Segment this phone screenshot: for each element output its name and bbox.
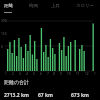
staticText: 2713.2 km [4, 92, 29, 99]
staticText: 9 [60, 72, 62, 76]
staticText: 6 [40, 72, 42, 76]
staticText: 150 [1, 32, 7, 36]
staticText: 2 [12, 72, 14, 76]
button[interactable]: カロリー [76, 3, 94, 12]
button[interactable]: 上昇 [51, 3, 60, 12]
staticText: 距離の合計 [4, 79, 30, 85]
staticText: 4 [26, 72, 28, 76]
staticText: 67 km [38, 92, 53, 99]
staticText: カロリー [76, 3, 94, 9]
staticText: 10 [67, 72, 71, 76]
staticText: 1 [94, 72, 96, 76]
staticText: 12 [85, 72, 89, 76]
staticText: 上昇 [51, 3, 60, 9]
staticText: 0 [1, 45, 3, 49]
staticText: 11 [76, 72, 80, 76]
staticText: 距離 [4, 3, 13, 9]
staticText: 5 [33, 72, 35, 76]
staticText: 7 [47, 72, 49, 76]
staticText: 1 [5, 72, 7, 76]
button[interactable]: 時間 [29, 3, 38, 12]
button[interactable]: 距離 [4, 3, 13, 13]
staticText: 3 [19, 72, 21, 76]
staticText: 時間 [29, 3, 38, 9]
staticText: 673 km [71, 92, 89, 99]
staticText: 8 [53, 72, 55, 76]
staticText: 300 [1, 19, 7, 23]
